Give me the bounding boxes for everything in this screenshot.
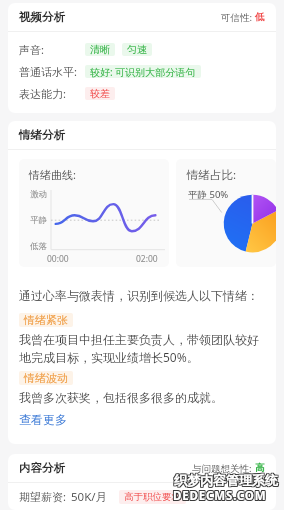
- staticText: 情绪占比:: [187, 167, 237, 183]
- staticText: 情绪曲线:: [29, 167, 76, 182]
- staticText: 平静: [30, 215, 47, 226]
- staticText: 期望薪资:: [19, 489, 71, 504]
- staticText: 织梦内容管理系统: [175, 473, 279, 489]
- staticText: DEDECMS.COM: [174, 488, 268, 504]
- staticText: DEDECMS.COM: [173, 487, 267, 503]
- staticText: 情绪分析: [19, 128, 65, 142]
- staticText: 织梦内容管理系统: [173, 473, 277, 489]
- staticText: 激动: [30, 189, 47, 200]
- staticText: 50K/月: [71, 489, 108, 505]
- staticText: 织梦内容管理系统: [173, 472, 277, 488]
- staticText: 织梦内容管理系统: [174, 471, 278, 487]
- staticText: 平静 50%: [188, 188, 229, 201]
- button[interactable]: 查看更多: [19, 412, 67, 427]
- staticText: 织梦内容管理系统: [175, 472, 279, 488]
- staticText: DEDECMS.COM: [173, 489, 267, 505]
- staticText: 视频分析: [19, 10, 65, 24]
- staticText: 织梦内容管理系统: [173, 471, 277, 487]
- staticText: 织梦内容管理系统: [174, 473, 278, 489]
- staticText: 查看更多: [19, 412, 67, 427]
- staticText: DEDECMS.COM: [174, 487, 268, 503]
- staticText: 声音:: [19, 42, 85, 57]
- staticText: DEDECMS.COM: [172, 489, 266, 505]
- staticText: 高: [255, 462, 265, 474]
- staticText: 与问题想关性:: [192, 462, 255, 475]
- staticText: 匀速: [127, 43, 147, 56]
- staticText: 情绪波动: [24, 371, 68, 385]
- staticText: 情绪紧张: [24, 313, 68, 327]
- staticText: 织梦内容管理系统: [175, 471, 279, 487]
- staticText: 高于职位要求: [124, 491, 181, 503]
- staticText: 较差: [90, 87, 110, 100]
- staticText: 低落: [30, 241, 47, 252]
- staticText: 低: [255, 11, 265, 23]
- staticText: 可信性:: [221, 11, 255, 24]
- staticText: 02:00: [136, 253, 158, 265]
- staticText: 00:00: [47, 253, 69, 265]
- staticText: 通过心率与微表情，识别到候选人以下情绪：: [19, 288, 259, 303]
- staticText: 内容分析: [19, 461, 65, 475]
- staticText: 织梦内容管理系统: [174, 472, 278, 488]
- staticText: 我曾在项目中担任主要负责人，带领团队较好地完成目标，实现业绩增长50%。: [19, 332, 265, 365]
- staticText: 较好: 可识别大部分语句: [90, 65, 196, 78]
- staticText: DEDECMS.COM: [172, 487, 266, 503]
- staticText: 表达能力:: [19, 86, 85, 101]
- staticText: DEDECMS.COM: [174, 489, 268, 505]
- staticText: DEDECMS.COM: [173, 488, 267, 504]
- staticText: 清晰: [90, 43, 110, 56]
- staticText: 普通话水平:: [19, 64, 85, 79]
- staticText: DEDECMS.COM: [172, 488, 266, 504]
- staticText: 我曾多次获奖，包括很多很多的成就。: [19, 390, 223, 405]
